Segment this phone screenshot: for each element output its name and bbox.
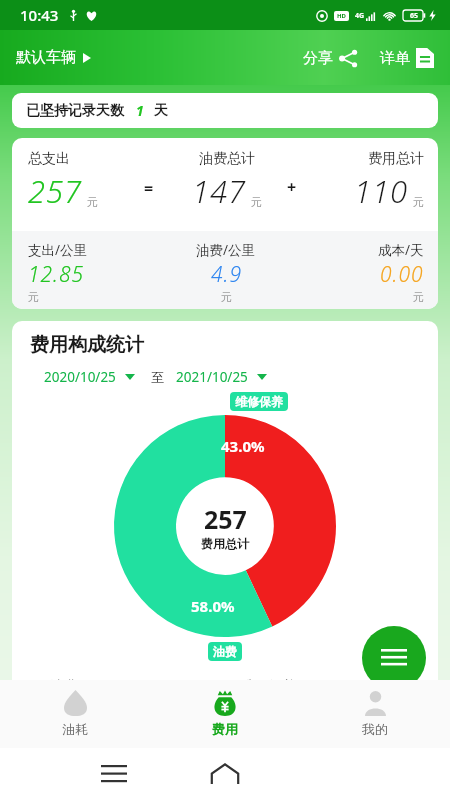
staticText: 天: [154, 102, 168, 120]
staticText: 65: [410, 11, 419, 21]
staticText: 10:43: [20, 5, 59, 25]
staticText: 元: [221, 290, 232, 304]
button[interactable]: 我的: [300, 680, 450, 748]
button[interactable]: 油耗: [0, 680, 150, 748]
staticText: 元: [413, 290, 424, 304]
button[interactable]: 详单: [376, 44, 438, 72]
staticText: 维修保养: [240, 678, 296, 696]
button[interactable]: 分享: [299, 45, 362, 72]
staticText: 至: [151, 369, 164, 385]
button[interactable]: Menu: [362, 626, 426, 690]
staticText: 257: [28, 170, 83, 212]
staticText: 4.9: [211, 260, 242, 289]
staticText: 元: [251, 195, 262, 209]
staticText: 我的: [362, 721, 388, 737]
staticText: 2021/10/25: [176, 368, 248, 386]
staticText: 12.85: [28, 260, 85, 289]
staticText: 元: [87, 195, 98, 209]
staticText: 1: [136, 101, 144, 120]
staticText: 2020/10/25: [44, 368, 116, 386]
staticText: HD: [337, 12, 346, 20]
staticText: 油费总计: [199, 150, 255, 168]
other: Recents: [101, 765, 127, 783]
button[interactable]: 费用: [150, 680, 300, 748]
staticText: 油费: [213, 644, 237, 659]
staticText: 0.00: [380, 260, 424, 289]
staticText: 油费/公里: [196, 241, 256, 259]
staticText: 详单: [380, 49, 410, 68]
staticText: 油耗: [62, 721, 88, 737]
staticText: 总支出: [28, 150, 70, 168]
button[interactable]: 支出/公里: [12, 231, 438, 309]
staticText: 分享: [303, 49, 333, 68]
staticText: 4G: [355, 11, 365, 21]
staticText: +: [287, 176, 297, 198]
staticText: 257: [204, 502, 247, 536]
staticText: 费用构成统计: [30, 333, 144, 357]
button[interactable]: 2020/10/25: [42, 366, 137, 388]
staticText: 油费: [50, 678, 78, 696]
other: Home: [210, 763, 240, 785]
button[interactable]: 2021/10/25: [174, 366, 269, 388]
staticText: 110: [354, 170, 409, 212]
staticText: 维修保养: [235, 394, 283, 409]
staticText: 支出/公里: [28, 241, 88, 259]
staticText: 成本/天: [378, 241, 424, 259]
button[interactable]: 已坚持记录天数: [12, 93, 438, 128]
staticText: 43.0%: [221, 436, 265, 456]
staticText: 已坚持记录天数: [26, 102, 124, 120]
staticText: 默认车辆: [16, 48, 76, 67]
staticText: 元: [28, 290, 39, 304]
staticText: 元: [413, 195, 424, 209]
staticText: 费用: [212, 721, 238, 737]
staticText: 58.0%: [191, 596, 235, 616]
button[interactable]: 默认车辆: [12, 44, 95, 71]
staticText: 147: [192, 170, 247, 212]
staticText: 费用总计: [368, 150, 424, 168]
button[interactable]: 总支出: [12, 138, 438, 231]
staticText: =: [144, 177, 154, 199]
staticText: 费用总计: [201, 536, 249, 551]
